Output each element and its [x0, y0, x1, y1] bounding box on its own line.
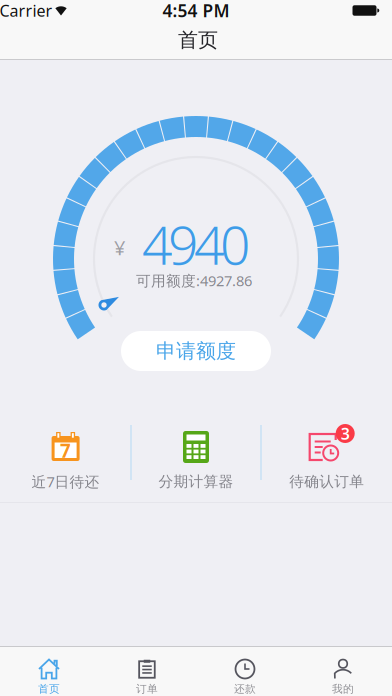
button[interactable]: 订单 [98, 647, 196, 696]
staticText: 订单 [136, 682, 158, 695]
staticText: 4940 [142, 209, 250, 279]
staticText: Carrier [0, 0, 52, 21]
button[interactable]: 首页 [0, 647, 98, 696]
button[interactable]: 分期计算器 [131, 402, 261, 492]
button[interactable]: 3 [262, 402, 392, 492]
button[interactable]: 7 [0, 402, 130, 492]
staticText: ¥ [114, 234, 125, 261]
staticText: 4:54 PM [162, 0, 229, 22]
button[interactable]: 还款 [196, 647, 294, 696]
button[interactable]: 申请额度 [121, 331, 271, 371]
button[interactable]: 我的 [294, 647, 392, 696]
staticText: 可用额度:4927.86 [136, 271, 252, 290]
staticText: 还款 [234, 682, 256, 695]
staticText: 待确认订单 [289, 472, 364, 490]
staticText: 分期计算器 [158, 472, 233, 490]
staticText: 申请额度 [156, 339, 236, 363]
staticText: 我的 [332, 682, 354, 695]
staticText: 近7日待还 [32, 472, 100, 491]
staticText: 首页 [38, 682, 60, 695]
staticText: 首页 [178, 28, 218, 52]
staticText: 7 [60, 438, 71, 463]
staticText: 3 [341, 423, 350, 444]
